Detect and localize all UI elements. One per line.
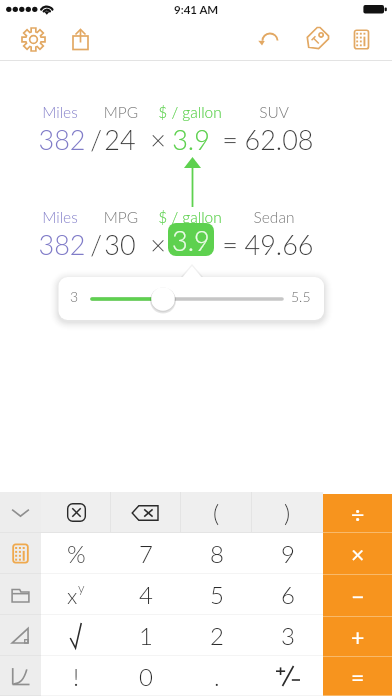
staticText: Sedan <box>214 208 334 227</box>
button[interactable]: 9 <box>252 533 323 574</box>
button[interactable]: 1 <box>111 615 181 656</box>
staticText: / <box>36 228 156 260</box>
staticText: x <box>67 582 78 608</box>
staticText: ! <box>73 662 80 691</box>
staticText: × <box>351 540 365 568</box>
staticText: × <box>98 228 218 260</box>
staticText: $ / gallon <box>130 103 250 122</box>
staticText: 8 <box>210 539 224 568</box>
button[interactable] <box>41 492 111 533</box>
staticText: × <box>98 123 218 155</box>
staticText: 24 <box>60 123 180 155</box>
button[interactable]: Graph <box>0 656 41 696</box>
staticText: ) <box>284 498 291 527</box>
staticText: 5.5 <box>291 288 311 305</box>
staticText: 382 <box>2 123 122 155</box>
button[interactable]: Tags <box>299 22 333 56</box>
button[interactable]: 4 <box>111 574 181 615</box>
staticText: 9:41 AM <box>174 3 219 17</box>
button[interactable]: ( <box>181 492 252 533</box>
button[interactable]: + <box>323 617 392 657</box>
staticText: ( <box>213 498 220 527</box>
staticText: 3 <box>281 621 295 650</box>
staticText: 4 <box>139 580 153 609</box>
staticText: % <box>67 539 86 568</box>
staticText: 62.08 <box>219 123 339 155</box>
staticText: 9 <box>281 539 295 568</box>
button[interactable]: 8 <box>181 533 252 574</box>
button[interactable]: x <box>41 574 111 615</box>
button[interactable]: 5 <box>181 574 252 615</box>
button[interactable]: Files <box>0 574 41 615</box>
button[interactable]: ÷ <box>323 494 392 533</box>
button[interactable]: Settings <box>16 22 50 56</box>
staticText: = <box>170 228 290 260</box>
button[interactable]: 6 <box>252 574 323 615</box>
button[interactable]: 3 <box>252 615 323 656</box>
button[interactable]: % <box>41 533 111 574</box>
staticText: 6 <box>281 580 295 609</box>
button[interactable]: ! <box>41 656 111 696</box>
button[interactable]: . <box>181 656 252 696</box>
button[interactable]: 2 <box>181 615 252 656</box>
button[interactable]: 7 <box>111 533 181 574</box>
staticText: = <box>170 123 290 155</box>
staticText: 7 <box>139 539 153 568</box>
staticText: y <box>78 580 85 596</box>
staticText: + <box>351 623 365 651</box>
button[interactable] <box>252 656 323 696</box>
staticText: / <box>36 123 156 155</box>
button[interactable]: Calculator <box>0 533 41 574</box>
staticText: 49.66 <box>219 228 339 260</box>
staticText: 30 <box>60 228 180 260</box>
button[interactable]: Geometry <box>0 615 41 656</box>
staticText: − <box>351 582 365 610</box>
staticText: 382 <box>2 228 122 260</box>
staticText: 5 <box>210 580 224 609</box>
button[interactable] <box>41 615 111 656</box>
staticText: . <box>214 662 220 691</box>
staticText: 0 <box>139 662 153 691</box>
staticText: 3.9 <box>172 224 210 256</box>
staticText: = <box>351 663 365 691</box>
staticText: Miles <box>0 103 120 122</box>
button[interactable]: = <box>323 657 392 696</box>
button[interactable] <box>111 492 181 533</box>
staticText: ÷ <box>351 500 365 528</box>
button[interactable]: Keypad <box>344 22 378 56</box>
staticText: Miles <box>0 208 120 227</box>
staticText: SUV <box>214 103 334 122</box>
staticText: 3.9 <box>131 123 251 155</box>
staticText: MPG <box>61 103 181 122</box>
button[interactable]: Collapse <box>0 492 41 533</box>
staticText: 3 <box>70 288 79 305</box>
button[interactable]: ) <box>252 492 323 533</box>
staticText: MPG <box>61 208 181 227</box>
button[interactable]: − <box>323 575 392 617</box>
staticText: $ / gallon <box>130 208 250 227</box>
button[interactable]: × <box>323 533 392 575</box>
button[interactable]: 0 <box>111 656 181 696</box>
button[interactable]: Share <box>63 22 97 56</box>
button[interactable]: 3.9 <box>168 223 214 256</box>
staticText: 1 <box>139 621 153 650</box>
staticText: 2 <box>210 621 224 650</box>
button[interactable]: Undo <box>252 22 286 56</box>
